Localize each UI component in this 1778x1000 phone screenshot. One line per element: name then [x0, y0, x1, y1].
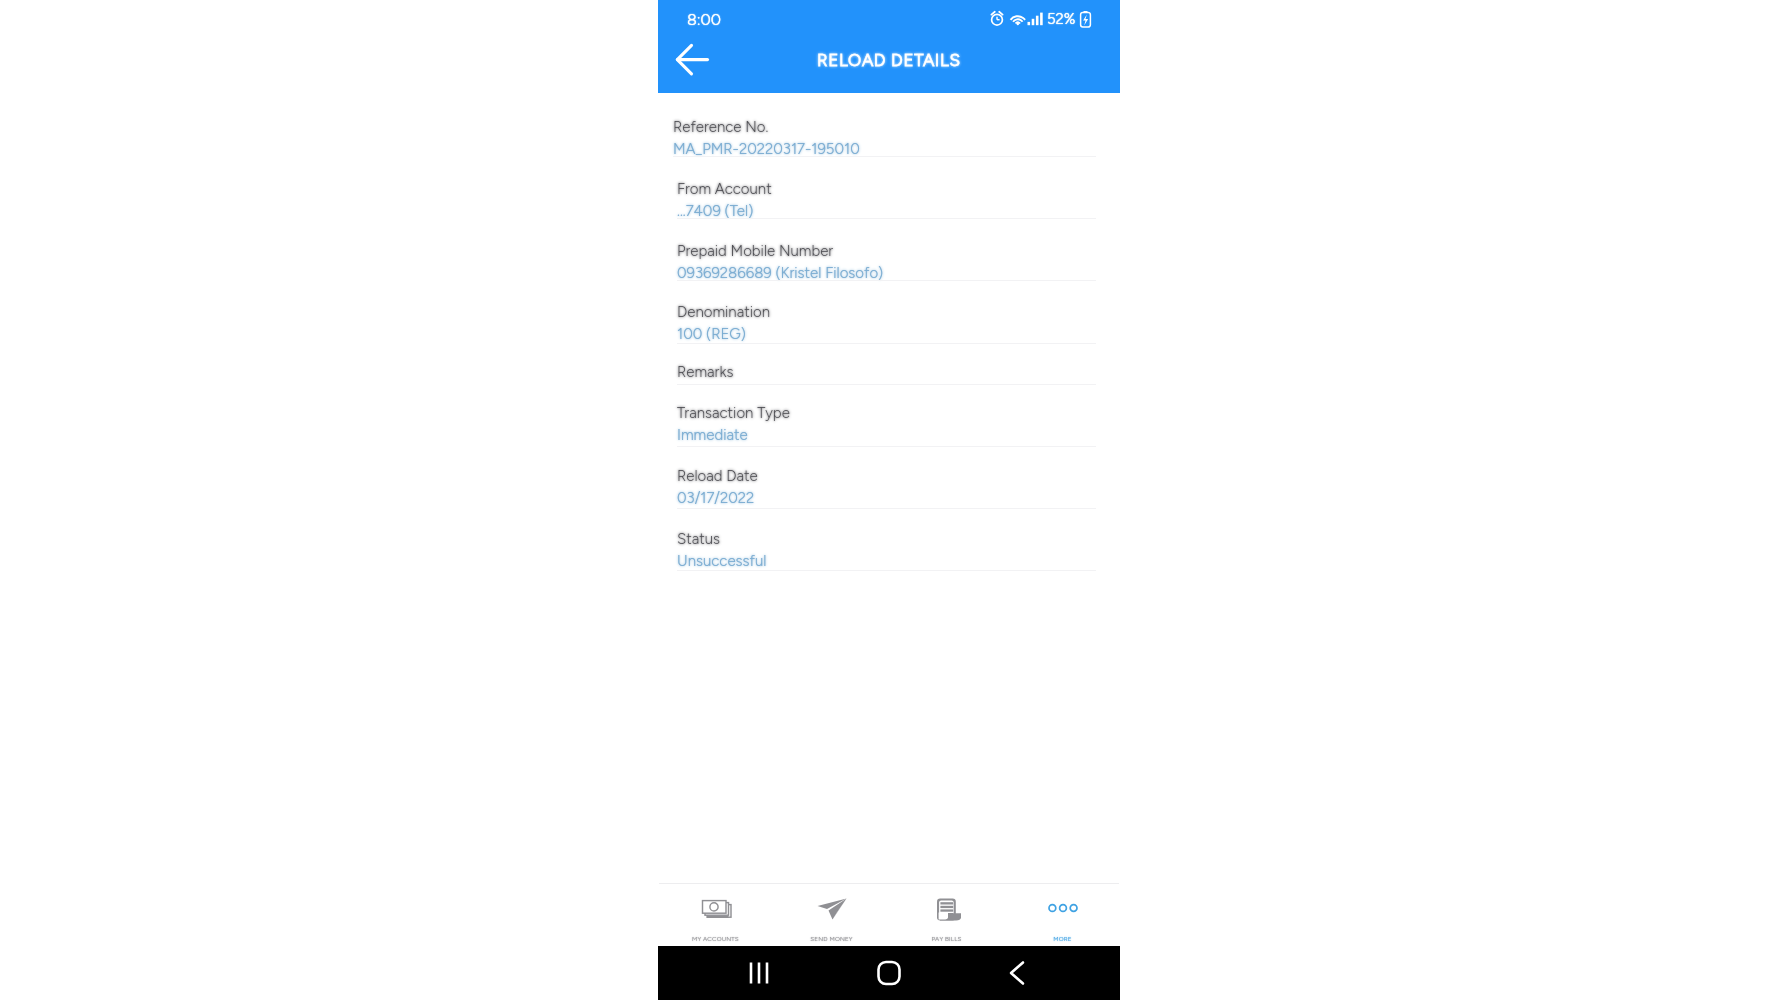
staticText: 09369286689 (Kristel Filosofo)	[677, 264, 884, 282]
staticText: 100 (REG)	[677, 325, 746, 343]
staticText: Reload Date	[677, 467, 758, 485]
staticText: Reference No.	[673, 118, 769, 136]
staticText: 52%	[1047, 10, 1076, 28]
button[interactable]: Home	[862, 946, 916, 1000]
button[interactable]: Denomination	[658, 281, 1120, 344]
staticText: ...7409 (Tel)	[677, 202, 754, 220]
staticText: MA_PMR-20220317-195010	[673, 140, 860, 158]
staticText: Unsuccessful	[677, 552, 767, 570]
staticText: MORE	[1053, 935, 1072, 943]
staticText: RELOAD DETAILS	[817, 50, 961, 70]
staticText: PAY BILLS	[931, 935, 962, 943]
button[interactable]: Reference No.	[658, 93, 1120, 157]
button[interactable]: Recent apps	[732, 946, 786, 1000]
staticText: Transaction Type	[677, 404, 790, 422]
staticText: Remarks	[677, 363, 734, 381]
button[interactable]: Back	[660, 28, 724, 92]
staticText: Denomination	[677, 303, 770, 321]
staticText: Status	[677, 530, 721, 548]
staticText: 8:00	[687, 10, 722, 29]
button[interactable]: Back	[990, 946, 1044, 1000]
button[interactable]: Transaction Type	[658, 385, 1120, 447]
button[interactable]: PAY BILLS	[889, 883, 1004, 946]
staticText: From Account	[677, 180, 772, 198]
button[interactable]: Prepaid Mobile Number	[658, 219, 1120, 281]
staticText: SEND MONEY	[810, 935, 853, 943]
button[interactable]: SEND MONEY	[774, 883, 889, 946]
staticText: Prepaid Mobile Number	[677, 242, 834, 260]
staticText: Immediate	[677, 426, 748, 444]
button[interactable]: Remarks	[658, 344, 1120, 385]
button[interactable]: MY ACCOUNTS	[658, 883, 773, 946]
button[interactable]: Status	[658, 509, 1120, 571]
staticText: 03/17/2022	[677, 489, 755, 507]
button[interactable]: From Account	[658, 157, 1120, 219]
staticText: MY ACCOUNTS	[692, 935, 739, 943]
button[interactable]: Reload Date	[658, 447, 1120, 509]
button[interactable]: MORE	[1005, 883, 1120, 946]
